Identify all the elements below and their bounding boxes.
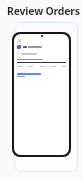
button[interactable]: [17, 45, 66, 49]
button[interactable]: Search: [17, 52, 66, 55]
button[interactable]: Close: [17, 38, 22, 43]
staticText: Review Orders: [7, 4, 80, 18]
other: Search: [17, 52, 20, 55]
